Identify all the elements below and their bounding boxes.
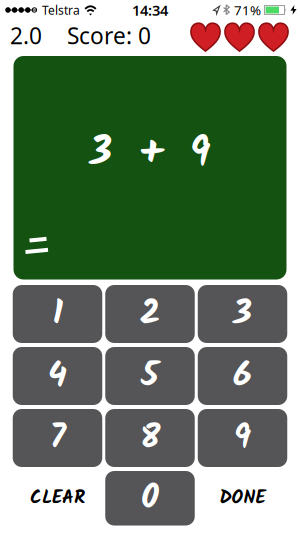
button[interactable]: 8	[105, 409, 195, 467]
button[interactable]: CLEAR	[13, 471, 102, 525]
staticText: 7	[49, 410, 65, 466]
staticText: 6	[233, 348, 252, 404]
button[interactable]: 6	[198, 347, 287, 405]
staticText: 0	[141, 471, 159, 526]
staticText: 5	[141, 348, 159, 404]
staticText: 2.0	[10, 20, 42, 50]
staticText: DONE	[219, 483, 265, 513]
button[interactable]: 5	[105, 347, 195, 405]
staticText: 4	[48, 348, 67, 404]
staticText: 2	[140, 286, 160, 342]
staticText: 3	[233, 286, 252, 342]
staticText: Telstra	[42, 2, 80, 18]
button[interactable]: 2	[105, 285, 195, 343]
staticText: 9	[189, 121, 210, 187]
staticText: 14:34	[132, 0, 168, 20]
button[interactable]: 1	[13, 285, 102, 343]
button[interactable]: 3	[198, 285, 287, 343]
button[interactable]: DONE	[198, 471, 287, 525]
staticText: 8	[140, 410, 160, 466]
staticText: 9	[233, 410, 251, 466]
staticText: Score: 0	[67, 20, 151, 50]
staticText: 1	[52, 286, 62, 342]
button[interactable]: 4	[13, 347, 102, 405]
button[interactable]: 7	[13, 409, 102, 467]
staticText: 3	[89, 121, 112, 187]
button[interactable]: 9	[198, 409, 287, 467]
button[interactable]: 0	[105, 471, 195, 525]
staticText: 71%	[234, 1, 261, 19]
staticText: CLEAR	[30, 483, 85, 513]
staticText: +	[138, 121, 163, 187]
